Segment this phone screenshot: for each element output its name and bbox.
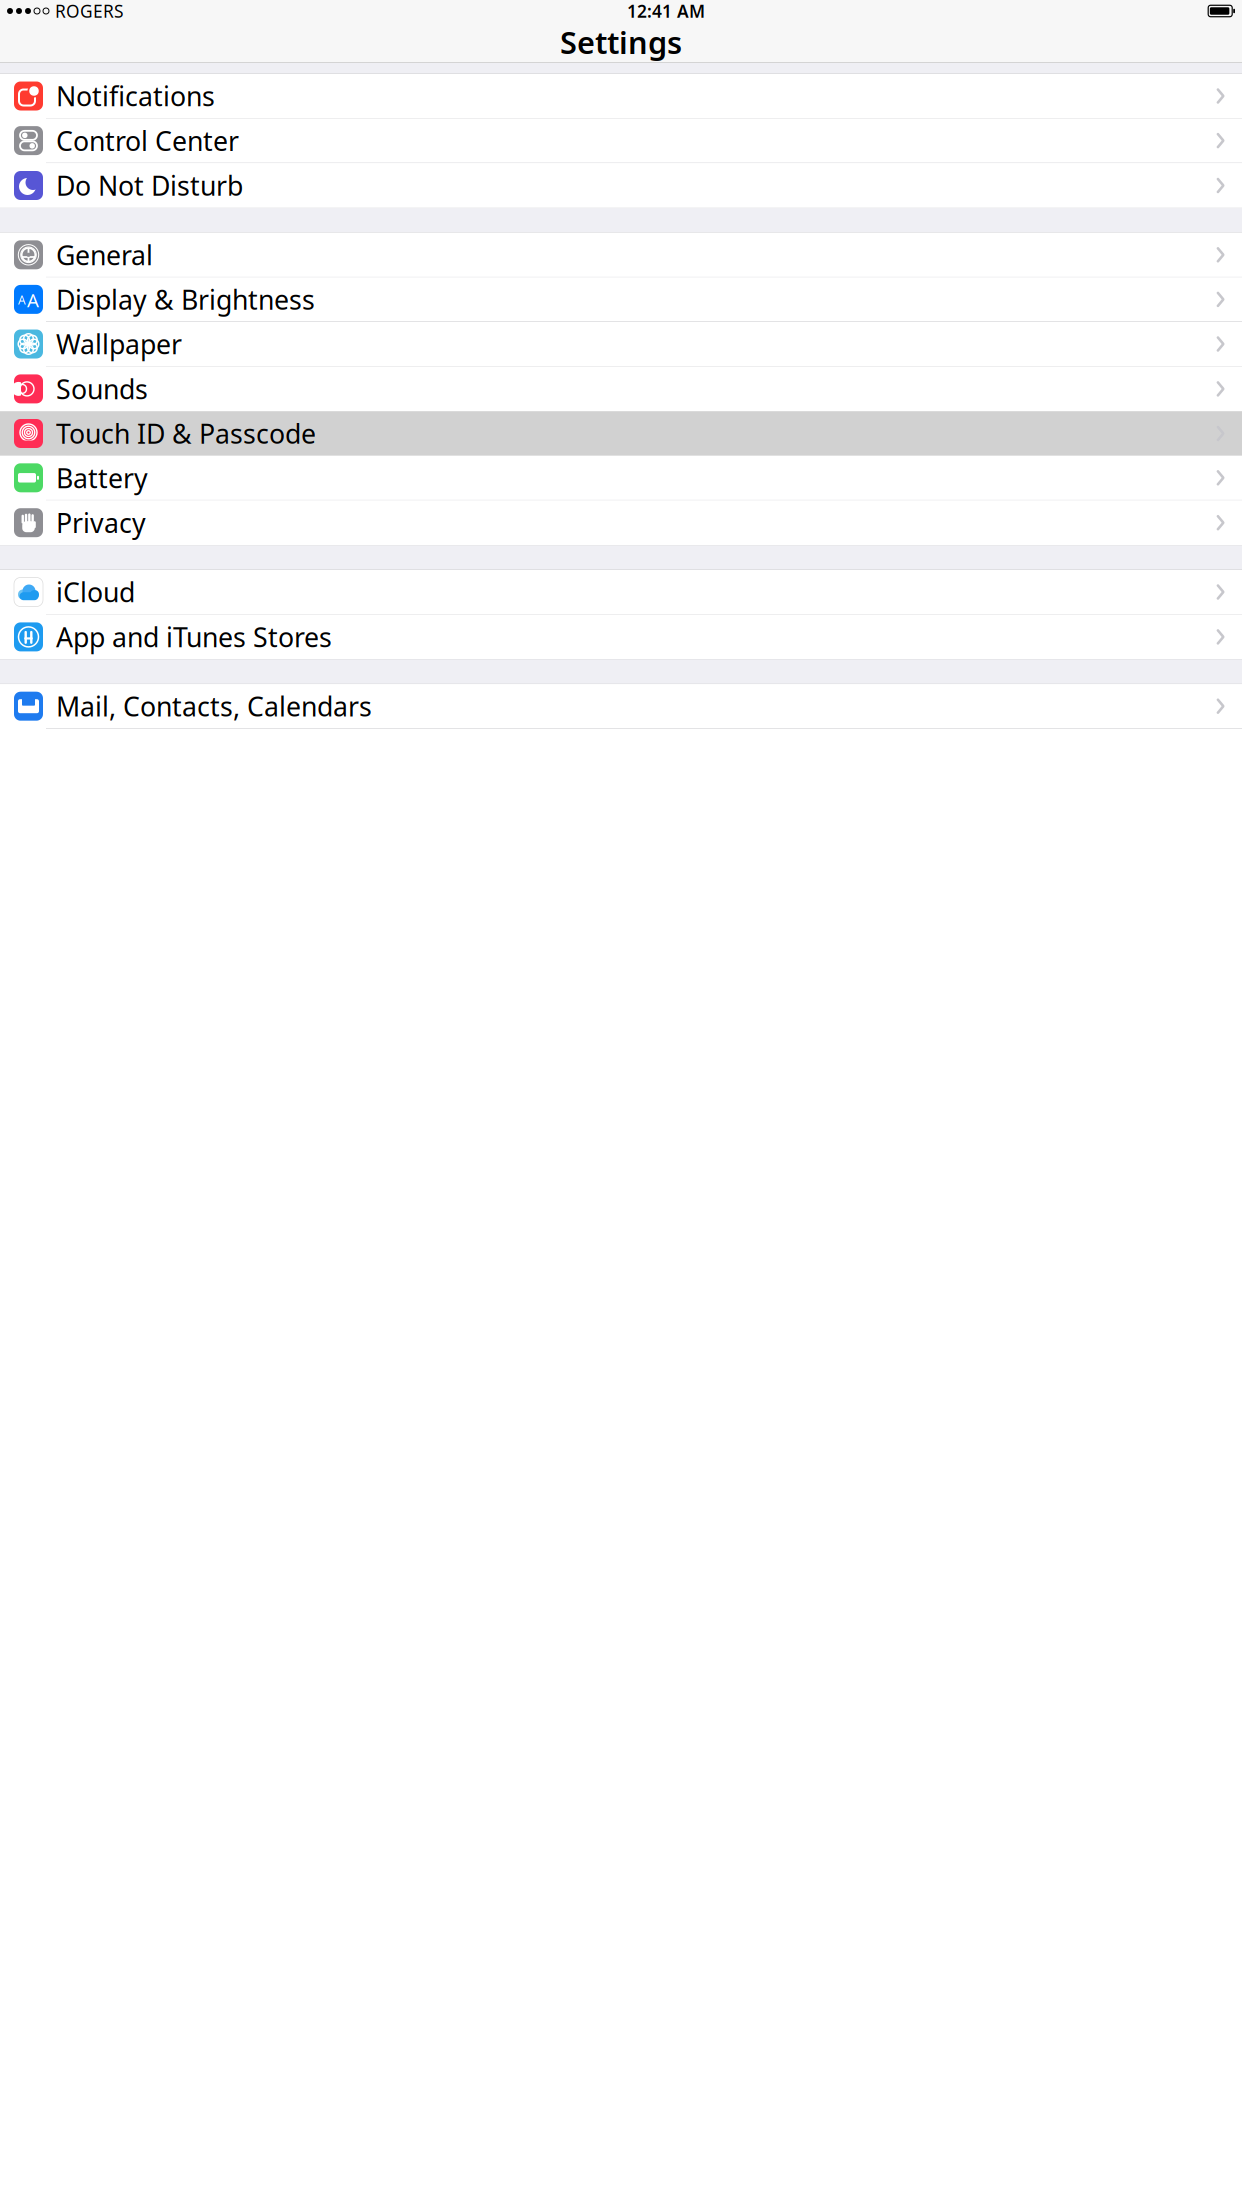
staticText: iCloud	[56, 574, 135, 610]
staticText: General	[56, 237, 153, 272]
button[interactable]: Touch ID & Passcode	[0, 411, 1242, 456]
button[interactable]: Mail, Contacts, Calendars	[0, 684, 1242, 729]
button[interactable]: App and iTunes Stores	[0, 615, 1242, 659]
staticText: Battery	[56, 460, 148, 495]
staticText: Mail, Contacts, Calendars	[56, 688, 372, 724]
button[interactable]: iCloud	[0, 570, 1242, 615]
staticText: A	[18, 292, 26, 308]
staticText: Sounds	[56, 371, 148, 407]
staticText: Settings	[560, 22, 682, 62]
button[interactable]: Sounds	[0, 367, 1242, 411]
staticText: Display & Brightness	[56, 282, 315, 317]
button[interactable]: Wallpaper	[0, 322, 1242, 367]
button[interactable]: Battery	[0, 456, 1242, 500]
button[interactable]: Notifications	[0, 74, 1242, 119]
staticText: Do Not Disturb	[56, 168, 243, 203]
button[interactable]: A	[0, 277, 1242, 322]
staticText: App and iTunes Stores	[56, 619, 332, 655]
staticText: Touch ID & Passcode	[56, 416, 316, 451]
staticText: A	[27, 287, 39, 312]
button[interactable]: General	[0, 233, 1242, 277]
button[interactable]: Privacy	[0, 500, 1242, 545]
staticText: Privacy	[56, 505, 146, 540]
staticText: 12:41 AM	[627, 0, 705, 22]
staticText: Control Center	[56, 123, 239, 158]
staticText: Wallpaper	[56, 326, 182, 362]
staticText: Notifications	[56, 78, 215, 114]
staticText: ROGERS	[55, 0, 124, 22]
button[interactable]: Do Not Disturb	[0, 163, 1242, 208]
button[interactable]: Control Center	[0, 119, 1242, 163]
